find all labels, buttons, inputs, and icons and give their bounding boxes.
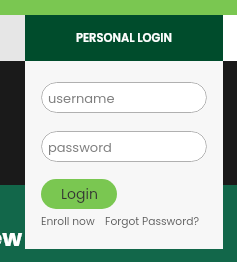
button[interactable]: Login [41, 179, 117, 209]
button[interactable]: PERSONAL LOGIN [25, 15, 223, 61]
staticText: username [48, 89, 115, 107]
staticText: PERSONAL LOGIN [76, 30, 173, 46]
staticText: password [48, 138, 112, 156]
staticText: ew [0, 222, 23, 254]
button[interactable]: Enroll now [41, 214, 95, 229]
button[interactable]: password [41, 131, 207, 162]
staticText: Login [61, 184, 98, 204]
button[interactable]: Forgot Password? [105, 214, 200, 229]
button[interactable]: username [41, 82, 207, 113]
